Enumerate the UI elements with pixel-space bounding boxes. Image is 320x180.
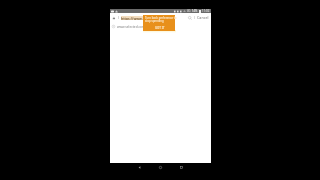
staticText: 4G	[187, 9, 191, 13]
button[interactable]: Search	[188, 16, 192, 20]
button[interactable]: Recent apps	[176, 163, 186, 172]
staticText: Cancel	[197, 15, 209, 20]
button[interactable]: GOT IT	[154, 26, 166, 30]
staticText: Turn back preference to	[145, 16, 177, 19]
button[interactable]: Back	[134, 163, 144, 172]
staticText: stop spending	[145, 19, 164, 22]
button[interactable]: Turn back preference to	[143, 15, 175, 31]
button[interactable]: Site information	[112, 16, 116, 20]
staticText: www.selected.cont	[117, 25, 146, 29]
button[interactable]: www.selected.cont	[110, 22, 211, 31]
button[interactable]: Home	[155, 163, 165, 172]
staticText: GOT IT	[155, 26, 165, 30]
staticText: https://www.eat.com	[121, 16, 143, 20]
button[interactable]: Site information	[110, 13, 211, 22]
button[interactable]: Cancel	[197, 14, 209, 21]
staticText: 11:02	[202, 9, 210, 13]
staticText: 14%	[192, 9, 198, 13]
